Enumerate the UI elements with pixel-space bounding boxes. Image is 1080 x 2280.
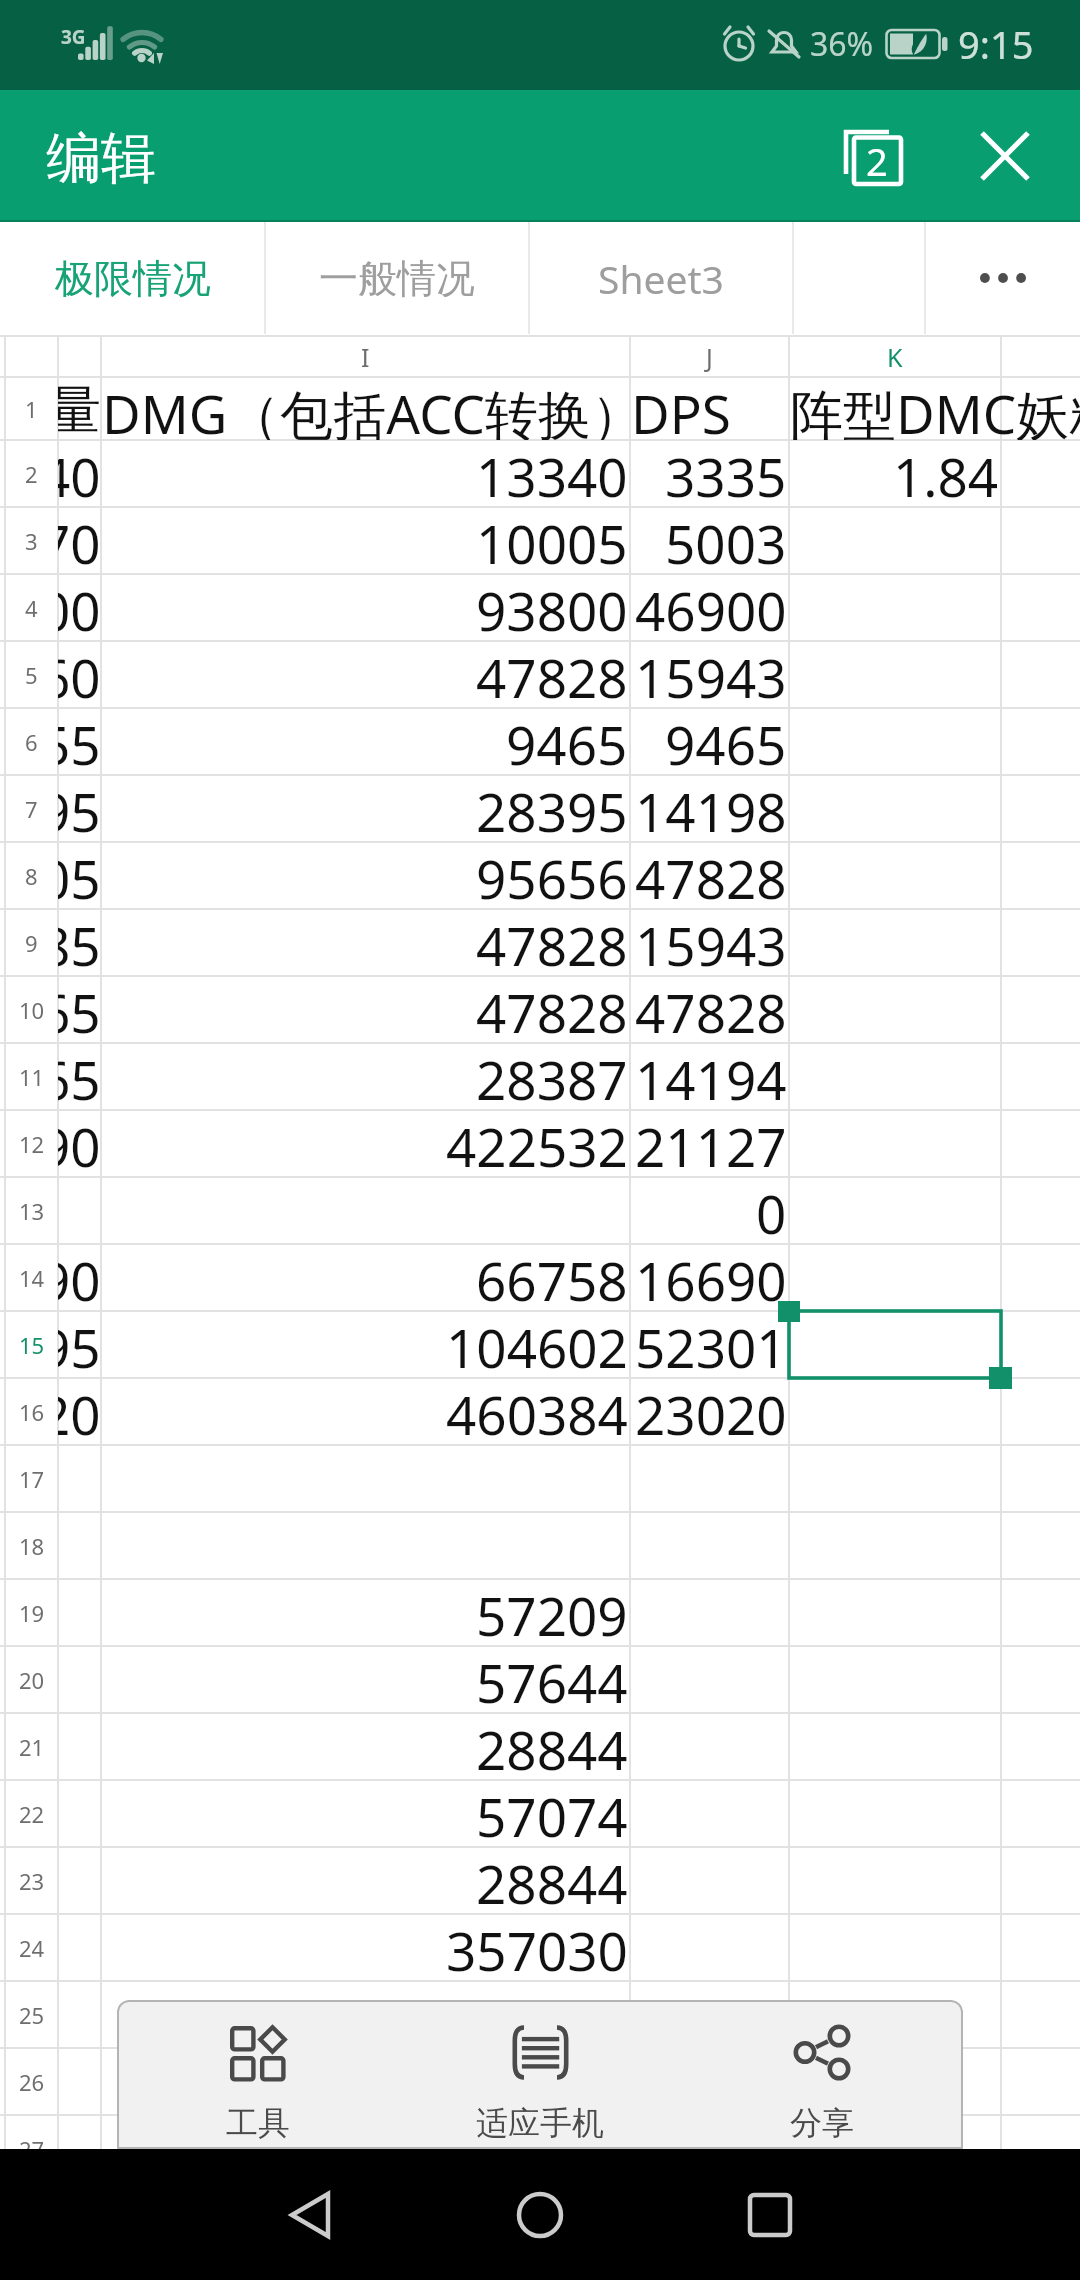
staticText: 36% (810, 22, 874, 66)
staticText: 1 (25, 394, 38, 424)
staticText: 15943 (635, 641, 787, 708)
button[interactable]: 极限情况 (0, 222, 265, 334)
button[interactable]: Recents (655, 2149, 885, 2280)
staticText: 2 (25, 459, 38, 489)
staticText: 22 (19, 1799, 45, 1829)
staticText: 产量 (58, 377, 101, 440)
staticText: 46900 (635, 574, 787, 641)
staticText: 57644 (476, 1646, 628, 1713)
staticText: 95656 (476, 842, 628, 909)
staticText: 4 (25, 593, 38, 623)
staticText: 0 (756, 1177, 787, 1244)
staticText: I (361, 340, 370, 374)
staticText: 47828 (476, 641, 628, 708)
staticText: 28395 (476, 775, 628, 842)
staticText: 47865 (58, 976, 101, 1043)
staticText: 极限情况 (55, 254, 211, 303)
staticText: 24 (19, 1933, 45, 1963)
staticText: 28395 (58, 775, 101, 842)
staticText: 一般情况 (319, 254, 475, 303)
staticText: 9 (25, 928, 38, 958)
staticText: 9:15 (958, 18, 1034, 70)
staticText: 5003 (665, 507, 787, 574)
staticText: 分享 (790, 2103, 854, 2143)
staticText: 14194 (635, 1043, 787, 1110)
staticText: 28387 (476, 1043, 628, 1110)
staticText: 11 (19, 1062, 45, 1092)
button[interactable]: More (925, 222, 1080, 334)
staticText: 20 (19, 1665, 45, 1695)
staticText: 357030 (446, 1914, 628, 1981)
staticText: 25 (19, 2000, 45, 2030)
staticText: 28844 (476, 1847, 628, 1914)
staticText: K (887, 340, 903, 374)
staticText: 57074 (476, 1780, 628, 1847)
staticText: Sheet3 (598, 252, 724, 305)
staticText: 12 (19, 1129, 45, 1159)
staticText: 阵型DMC妖精 (790, 377, 1080, 440)
staticText: 66790 (58, 1244, 101, 1311)
staticText: 21127 (635, 1110, 787, 1177)
staticText: 460384 (446, 1378, 628, 1445)
staticText: 94655 (58, 708, 101, 775)
staticText: 422532 (446, 1110, 628, 1177)
staticText: 13340 (476, 440, 628, 507)
button[interactable]: Back (195, 2149, 425, 2280)
staticText: 46020 (58, 1378, 101, 1445)
staticText: 23020 (635, 1378, 787, 1445)
button[interactable]: Home (425, 2149, 655, 2280)
staticText: 14198 (635, 775, 787, 842)
staticText: 21 (19, 1732, 45, 1762)
staticText: 28365 (58, 1043, 101, 1110)
staticText: 15943 (635, 909, 787, 976)
staticText: 13 (19, 1196, 45, 1226)
staticText: 47828 (635, 976, 787, 1043)
staticText: 14 (19, 1263, 45, 1293)
button[interactable]: 一般情况 (265, 222, 529, 334)
staticText: 93800 (58, 574, 101, 641)
staticText: 适应手机 (476, 2103, 604, 2143)
staticText: 52301 (635, 1311, 787, 1378)
staticText: 42290 (58, 1110, 101, 1177)
staticText: 93800 (476, 574, 628, 641)
staticText: 10070 (58, 507, 101, 574)
button[interactable]: Close (947, 98, 1063, 214)
staticText: 47828 (635, 842, 787, 909)
button[interactable]: 适应手机 (399, 2000, 681, 2149)
staticText: 7 (25, 794, 38, 824)
staticText: DMG（包括ACC转换） (102, 377, 645, 440)
staticText: 编辑 (46, 124, 156, 193)
staticText: 18 (19, 1531, 45, 1561)
staticText: 27 (19, 2134, 45, 2149)
staticText: J (706, 340, 713, 374)
button[interactable]: Workbooks (818, 98, 934, 214)
staticText: 3335 (665, 440, 787, 507)
staticText: 16690 (635, 1244, 787, 1311)
staticText: 26 (19, 2067, 45, 2097)
staticText: 16 (19, 1397, 45, 1427)
staticText: 10005 (476, 507, 628, 574)
staticText: 10495 (58, 1311, 101, 1378)
staticText: 13340 (58, 440, 101, 507)
staticText: 3 (25, 526, 38, 556)
staticText: 10 (19, 995, 45, 1025)
staticText: 9465 (665, 708, 787, 775)
staticText: 1.84 (893, 440, 999, 507)
staticText: 2 (866, 135, 888, 187)
button[interactable]: Sheet3 (529, 222, 793, 334)
staticText: DPS (631, 377, 731, 440)
staticText: 28844 (476, 1713, 628, 1780)
staticText: 17 (19, 1464, 45, 1494)
staticText: 47828 (476, 976, 628, 1043)
button[interactable]: 分享 (681, 2000, 963, 2149)
staticText: 工具 (226, 2103, 290, 2143)
staticText: 23 (19, 1866, 45, 1896)
staticText: 47885 (58, 909, 101, 976)
staticText: 15 (19, 1330, 45, 1360)
staticText: 66758 (476, 1244, 628, 1311)
staticText: 5 (25, 660, 38, 690)
button[interactable]: 工具 (117, 2000, 399, 2149)
staticText: 6 (25, 727, 38, 757)
staticText: 8 (25, 861, 38, 891)
staticText: 47828 (476, 909, 628, 976)
